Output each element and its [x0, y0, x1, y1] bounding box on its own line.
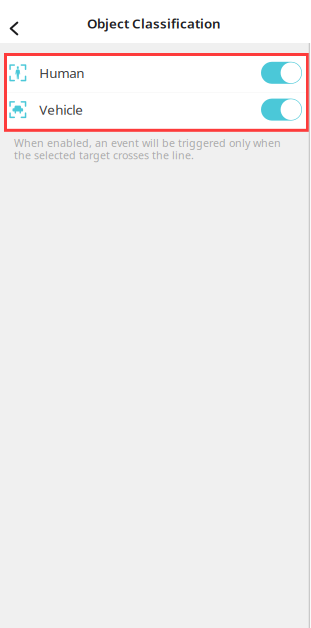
staticText: Vehicle — [39, 101, 83, 118]
staticText: Human — [39, 64, 84, 82]
staticText: Object Classification — [87, 14, 221, 32]
button[interactable]: Vehicle — [7, 93, 306, 129]
button[interactable]: Back — [3, 15, 25, 41]
staticText: When enabled, an event will be triggered… — [14, 136, 281, 162]
button[interactable]: Human — [7, 56, 306, 92]
